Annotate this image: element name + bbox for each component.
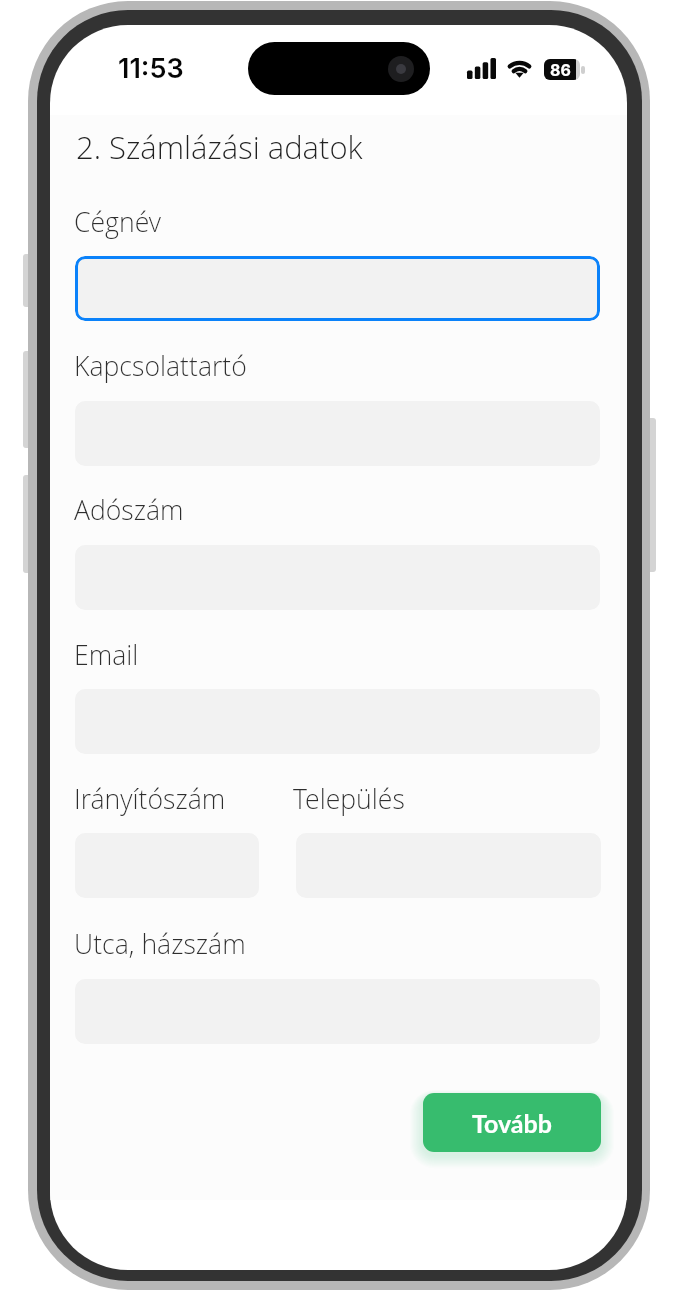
staticText: Cégnév (74, 204, 161, 240)
staticText: Utca, házszám (74, 926, 246, 962)
button[interactable]: Tovább (423, 1093, 601, 1152)
staticText: Email (74, 637, 139, 673)
staticText: Tovább (472, 1108, 552, 1138)
staticText: Település (293, 781, 405, 817)
button[interactable] (75, 256, 600, 321)
staticText: 11:53 (118, 52, 184, 85)
staticText: 86 (550, 60, 571, 79)
staticText: Kapcsolattartó (74, 348, 247, 384)
staticText: Irányítószám (74, 781, 226, 817)
staticText: Adószám (74, 492, 184, 528)
staticText: 2. Számlázási adatok (76, 126, 363, 168)
